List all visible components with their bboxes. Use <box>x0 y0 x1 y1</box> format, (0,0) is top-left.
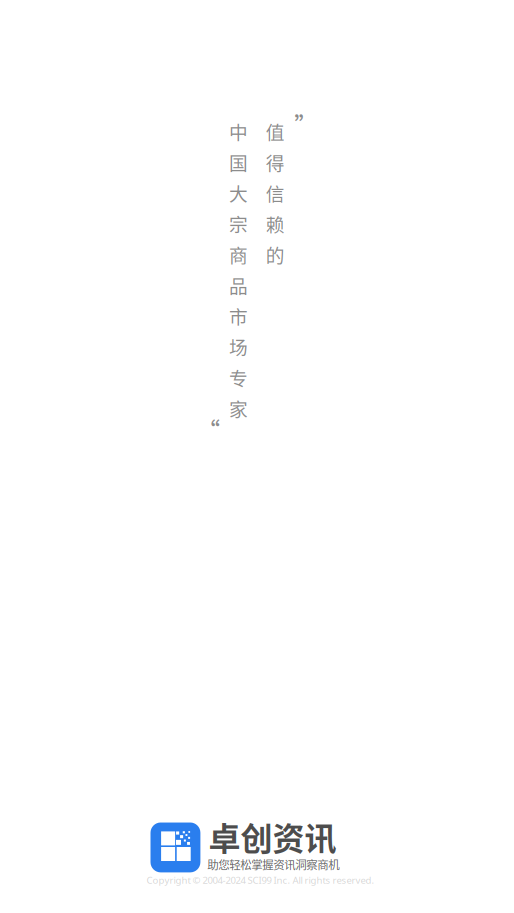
staticText: 宗 <box>229 210 248 237</box>
staticText: 专 <box>229 364 248 391</box>
staticText: “ <box>198 414 219 444</box>
staticText: 商 <box>229 241 248 268</box>
staticText: 中 <box>229 118 248 145</box>
staticText: 市 <box>229 302 248 329</box>
staticText: 赖 <box>266 210 285 237</box>
staticText: 国 <box>229 148 248 175</box>
staticText: 家 <box>229 394 248 421</box>
staticText: 助您轻松掌握资讯洞察商机 <box>207 856 339 873</box>
staticText: 场 <box>229 333 248 360</box>
staticText: 得 <box>266 148 285 175</box>
staticText: 值 <box>266 118 285 145</box>
staticText: 大 <box>229 179 248 206</box>
staticText: ” <box>294 109 315 139</box>
staticText: 信 <box>266 179 285 206</box>
staticText: 卓创资讯 <box>208 813 336 860</box>
staticText: 的 <box>266 241 285 268</box>
staticText: 品 <box>229 271 248 298</box>
staticText: Copyright © 2004-2024 SCI99 Inc. All rig… <box>146 873 374 887</box>
